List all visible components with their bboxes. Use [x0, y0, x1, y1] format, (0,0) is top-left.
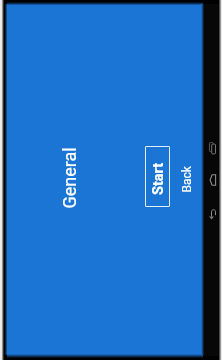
staticText: Back [179, 165, 193, 192]
button[interactable]: Back [175, 161, 197, 197]
staticText: Start [150, 162, 167, 195]
button[interactable]: Recent apps [203, 135, 222, 163]
button[interactable]: Home [203, 166, 222, 194]
button[interactable]: Back [203, 200, 222, 228]
staticText: General [58, 146, 79, 208]
button[interactable]: Start [145, 146, 170, 207]
